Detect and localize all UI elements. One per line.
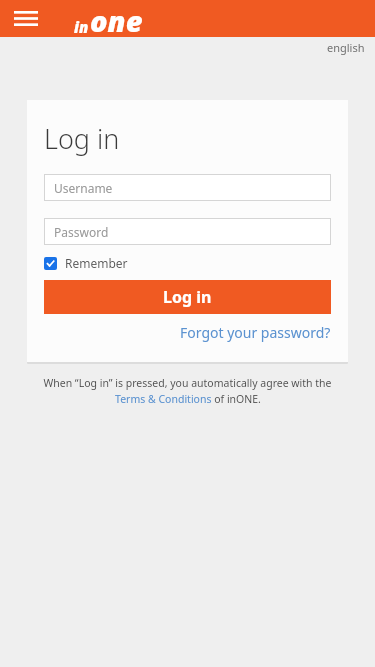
button[interactable]: Log in: [44, 280, 331, 314]
button[interactable]: english: [327, 40, 365, 55]
button[interactable]: Forgot your password?: [180, 323, 331, 342]
staticText: Remember: [65, 255, 128, 271]
staticText: one: [90, 1, 143, 38]
button[interactable]: in: [74, 0, 143, 37]
staticText: english: [327, 40, 365, 55]
button[interactable]: Password: [44, 218, 331, 245]
staticText: Terms & Conditions of inONE.: [115, 392, 261, 406]
button[interactable]: Menu: [8, 5, 44, 32]
staticText: Password: [54, 224, 109, 240]
staticText: Username: [54, 180, 113, 196]
staticText: When “Log in” is pressed, you automatica…: [43, 376, 332, 390]
button[interactable]: Terms & Conditions of inONE.: [115, 392, 261, 406]
button[interactable]: Username: [44, 174, 331, 201]
button[interactable]: Remember: [44, 253, 128, 273]
staticText: in: [74, 17, 89, 37]
staticText: Log in: [163, 286, 212, 308]
staticText: Log in: [44, 120, 120, 157]
staticText: Forgot your password?: [180, 323, 331, 342]
